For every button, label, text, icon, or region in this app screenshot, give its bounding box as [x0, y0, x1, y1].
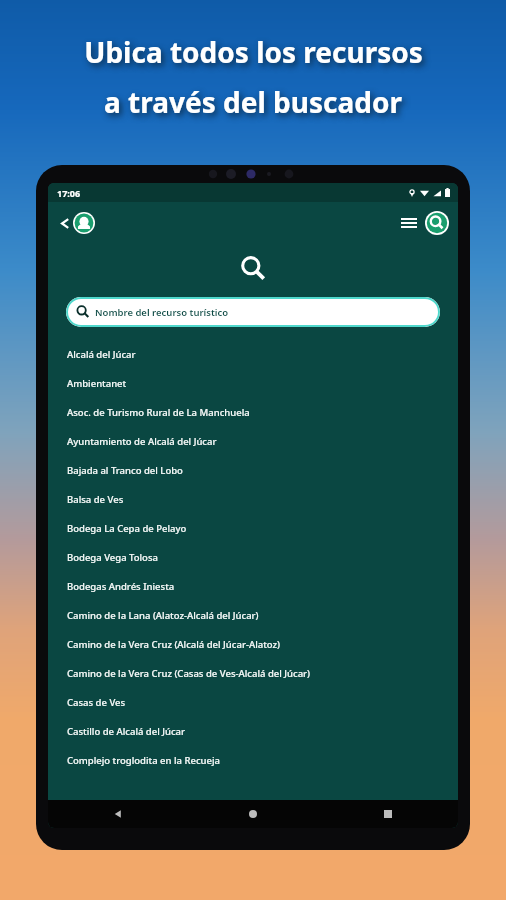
button[interactable]: Camino de la Vera Cruz (Casas de Ves-Alc…	[48, 659, 458, 688]
staticText: Bajada al Tranco del Lobo	[67, 464, 183, 477]
button[interactable]: Back	[104, 800, 132, 828]
staticText: Ayuntamiento de Alcalá del Júcar	[67, 435, 217, 448]
button[interactable]: Back	[56, 208, 99, 238]
staticText: Bodegas Andrés Iniesta	[67, 580, 175, 593]
button[interactable]: Camino de la Vera Cruz (Alcalá del Júcar…	[48, 630, 458, 659]
staticText: Bodega Vega Tolosa	[67, 551, 158, 564]
button[interactable]: Asoc. de Turismo Rural de La Manchuela	[48, 398, 458, 427]
button[interactable]: Ayuntamiento de Alcalá del Júcar	[48, 427, 458, 456]
button[interactable]: Home	[239, 800, 267, 828]
button[interactable]: Balsa de Ves	[48, 485, 458, 514]
staticText: Complejo troglodita en la Recueja	[67, 754, 220, 767]
button[interactable]: Bodega La Cepa de Pelayo	[48, 514, 458, 543]
staticText: Ambientanet	[67, 377, 127, 390]
staticText: Camino de la Lana (Alatoz-Alcalá del Júc…	[67, 609, 259, 622]
staticText: 17:06	[57, 187, 81, 199]
button[interactable]: Bodega Vega Tolosa	[48, 543, 458, 572]
button[interactable]: Recents	[374, 800, 402, 828]
staticText: Bodega La Cepa de Pelayo	[67, 522, 187, 535]
button[interactable]: Complejo troglodita en la Recueja	[48, 746, 458, 775]
button[interactable]: Camino de la Lana (Alatoz-Alcalá del Júc…	[48, 601, 458, 630]
button[interactable]: Nombre del recurso turístico	[66, 297, 440, 327]
button[interactable]: Bodegas Andrés Iniesta	[48, 572, 458, 601]
staticText: Balsa de Ves	[67, 493, 124, 506]
staticText: a través del buscador	[104, 83, 402, 121]
staticText: Ubica todos los recursos	[84, 33, 423, 71]
staticText: Alcalá del Júcar	[67, 348, 136, 361]
button[interactable]: Menu	[398, 214, 420, 232]
staticText: Casas de Ves	[67, 696, 126, 709]
staticText: Castillo de Alcalá del Júcar	[67, 725, 186, 738]
staticText: Camino de la Vera Cruz (Alcalá del Júcar…	[67, 638, 281, 651]
staticText: Nombre del recurso turístico	[95, 306, 229, 319]
staticText: Camino de la Vera Cruz (Casas de Ves-Alc…	[67, 667, 311, 680]
button[interactable]: Ambientanet	[48, 369, 458, 398]
button[interactable]: Casas de Ves	[48, 688, 458, 717]
button[interactable]: Bajada al Tranco del Lobo	[48, 456, 458, 485]
staticText: Asoc. de Turismo Rural de La Manchuela	[67, 406, 250, 419]
button[interactable]: Search	[425, 211, 449, 235]
button[interactable]: Alcalá del Júcar	[48, 340, 458, 369]
button[interactable]: Castillo de Alcalá del Júcar	[48, 717, 458, 746]
